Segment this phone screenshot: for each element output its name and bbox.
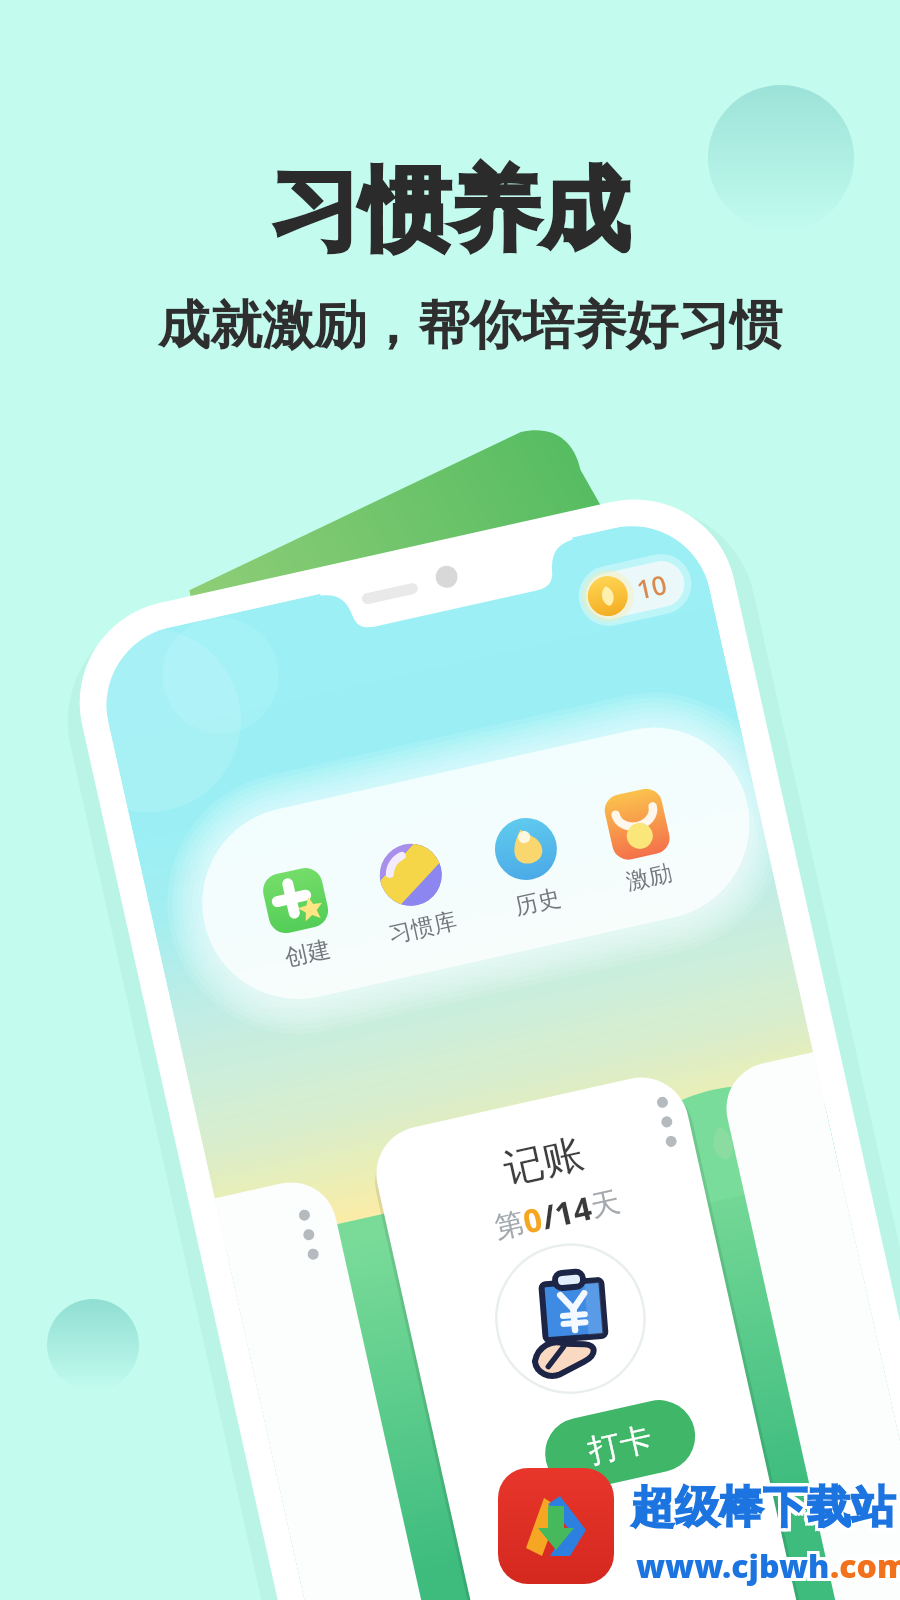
button[interactable]: 记账 第0/14天 [390, 1070, 710, 1490]
button[interactable]: 更多选项 [634, 1080, 688, 1134]
button[interactable]: 打卡 [556, 1409, 684, 1481]
button[interactable]: 金币 10 [566, 558, 692, 622]
button[interactable]: 创建 [238, 843, 354, 959]
button[interactable]: 激励 [579, 766, 695, 882]
button[interactable]: 更多选项 [290, 1190, 344, 1244]
button[interactable]: 历史 [468, 791, 584, 907]
button[interactable]: 习惯库 [353, 817, 469, 933]
